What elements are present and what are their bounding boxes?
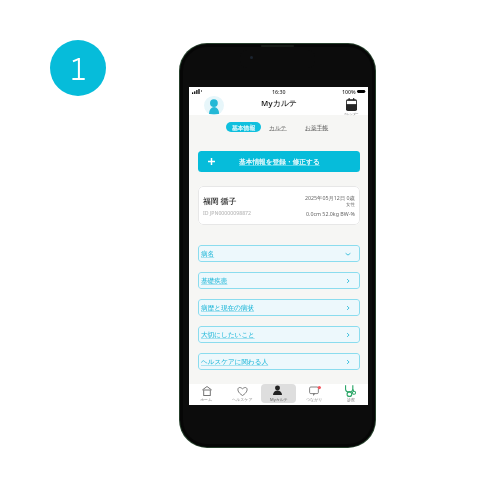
staticText: 診察 [347, 397, 355, 402]
staticText: カルテ [269, 124, 287, 131]
button[interactable]: つながり [297, 384, 332, 403]
button[interactable]: Calendar [344, 98, 359, 116]
button[interactable]: 福岡 循子 [198, 186, 360, 225]
staticText: ヘルスケアに関わる人 [201, 358, 269, 366]
staticText: お薬手帳 [305, 124, 329, 131]
button[interactable]: ホーム [189, 384, 224, 403]
staticText: 女性 [346, 202, 355, 208]
staticText: 0.0cm 52.0kg BW-% [306, 210, 355, 217]
button[interactable]: カルテ [268, 122, 288, 132]
staticText: 福岡 循子 [203, 196, 237, 207]
staticText: ID JPN00000098872 [203, 209, 252, 216]
staticText: 16:30 [272, 88, 286, 95]
staticText: 大切にしたいこと [201, 331, 255, 339]
button[interactable]: Myカルテ [261, 384, 296, 403]
staticText: 基礎疾患 [201, 277, 228, 285]
staticText: 基本情報 [232, 124, 256, 131]
staticText: 病名 [201, 250, 215, 258]
staticText: 2025年05月12日 0歳 [305, 194, 355, 201]
button[interactable]: 病歴と現在の病状 [198, 299, 360, 316]
staticText: つながり [306, 397, 323, 402]
staticText: カレンダー [344, 112, 359, 116]
staticText: 病歴と現在の病状 [201, 304, 255, 312]
staticText: 100% [342, 88, 356, 95]
staticText: ヘルスケア [232, 397, 253, 402]
button[interactable]: 基本情報 [226, 122, 261, 132]
button[interactable]: 病名 [198, 245, 360, 262]
button[interactable]: 基本情報を登録・修正する [198, 151, 360, 172]
staticText: ホーム [200, 397, 213, 402]
staticText: 基本情報を登録・修正する [239, 158, 320, 166]
staticText: Myカルテ [261, 98, 297, 109]
button[interactable]: Profile [204, 96, 224, 115]
button[interactable]: お薬手帳 [304, 122, 330, 132]
button[interactable]: 診察 [333, 384, 368, 403]
button[interactable]: 基礎疾患 [198, 272, 360, 289]
button[interactable]: ヘルスケア [225, 384, 260, 403]
button[interactable]: 大切にしたいこと [198, 326, 360, 343]
staticText: Myカルテ [270, 397, 288, 402]
button[interactable]: ヘルスケアに関わる人 [198, 353, 360, 370]
